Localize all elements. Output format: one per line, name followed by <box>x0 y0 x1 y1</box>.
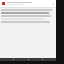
button[interactable]: Profile <box>41 58 44 61</box>
button[interactable]: Home <box>12 58 15 61</box>
button[interactable] <box>0 21 56 23</box>
button[interactable]: App logo <box>0 0 56 7</box>
other: App logo <box>2 2 5 5</box>
button[interactable] <box>0 15 56 17</box>
button[interactable] <box>0 9 56 11</box>
button[interactable]: Search <box>27 58 30 61</box>
button[interactable] <box>0 18 56 20</box>
button[interactable] <box>0 12 56 14</box>
